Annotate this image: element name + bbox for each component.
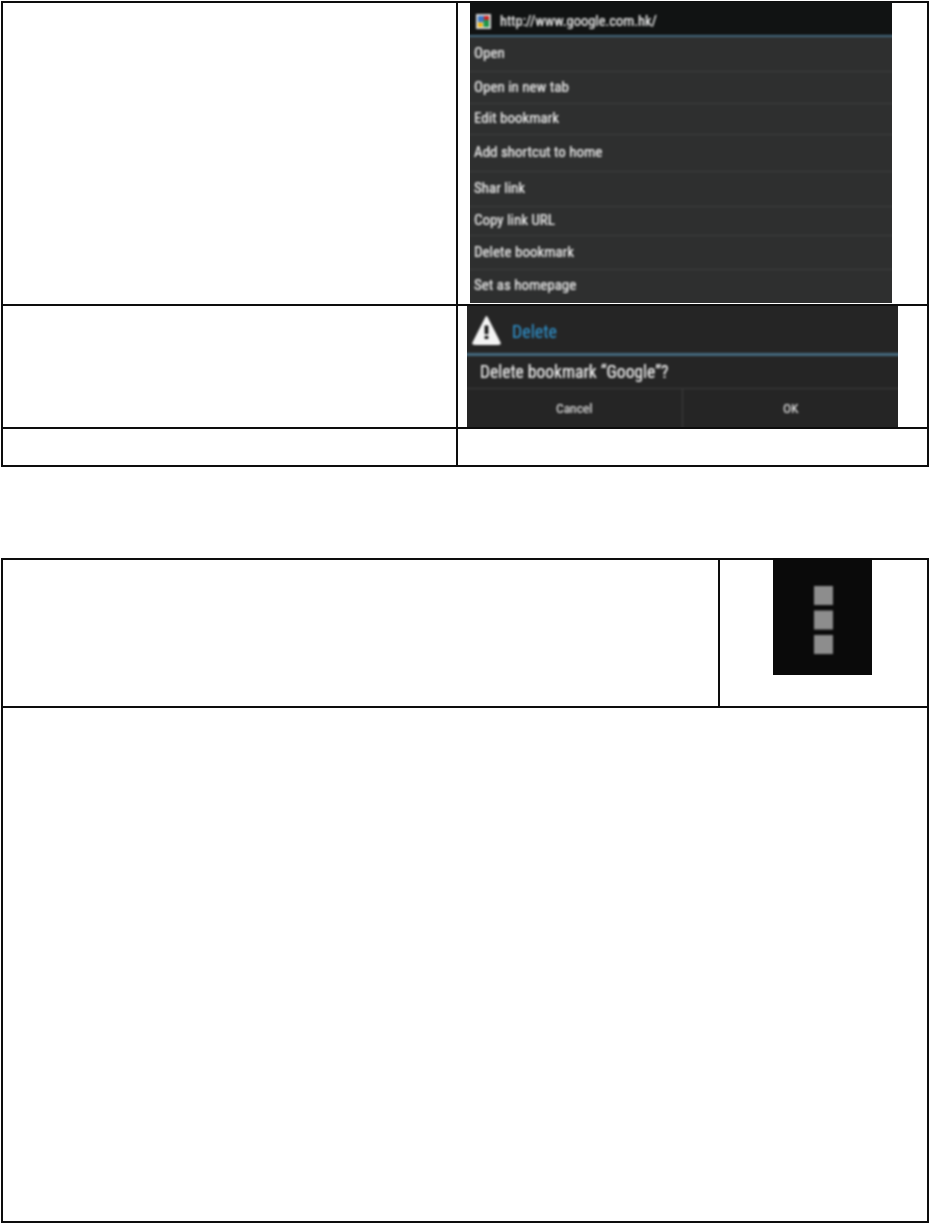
staticText: Delete bookmark <box>474 243 575 261</box>
staticText: Open in new tab <box>474 78 569 96</box>
button[interactable]: Copy link URL <box>470 207 892 235</box>
staticText: OK <box>783 400 799 416</box>
staticText: Delete bookmark “Google”? <box>480 362 669 383</box>
staticText: Add shortcut to home <box>474 143 603 161</box>
staticText: Edit bookmark <box>474 109 560 127</box>
staticText: Cancel <box>556 400 593 416</box>
button[interactable]: OK <box>683 389 898 427</box>
button[interactable]: More options <box>773 558 872 675</box>
button[interactable]: Open in new tab <box>470 72 892 103</box>
button[interactable]: Shar link <box>470 172 892 206</box>
staticText: Copy link URL <box>474 211 555 229</box>
button[interactable]: Delete bookmark <box>470 236 892 269</box>
button[interactable]: Add shortcut to home <box>470 135 892 171</box>
staticText: http://www.google.com.hk/ <box>500 13 657 30</box>
button[interactable]: Open <box>470 37 892 71</box>
staticText: Delete <box>512 321 558 342</box>
staticText: Open <box>474 44 505 62</box>
button[interactable]: Set as homepage <box>470 270 892 302</box>
button[interactable]: Edit bookmark <box>470 104 892 134</box>
staticText: Shar link <box>474 179 526 197</box>
staticText: Set as homepage <box>474 276 577 294</box>
button[interactable]: Cancel <box>467 389 682 427</box>
